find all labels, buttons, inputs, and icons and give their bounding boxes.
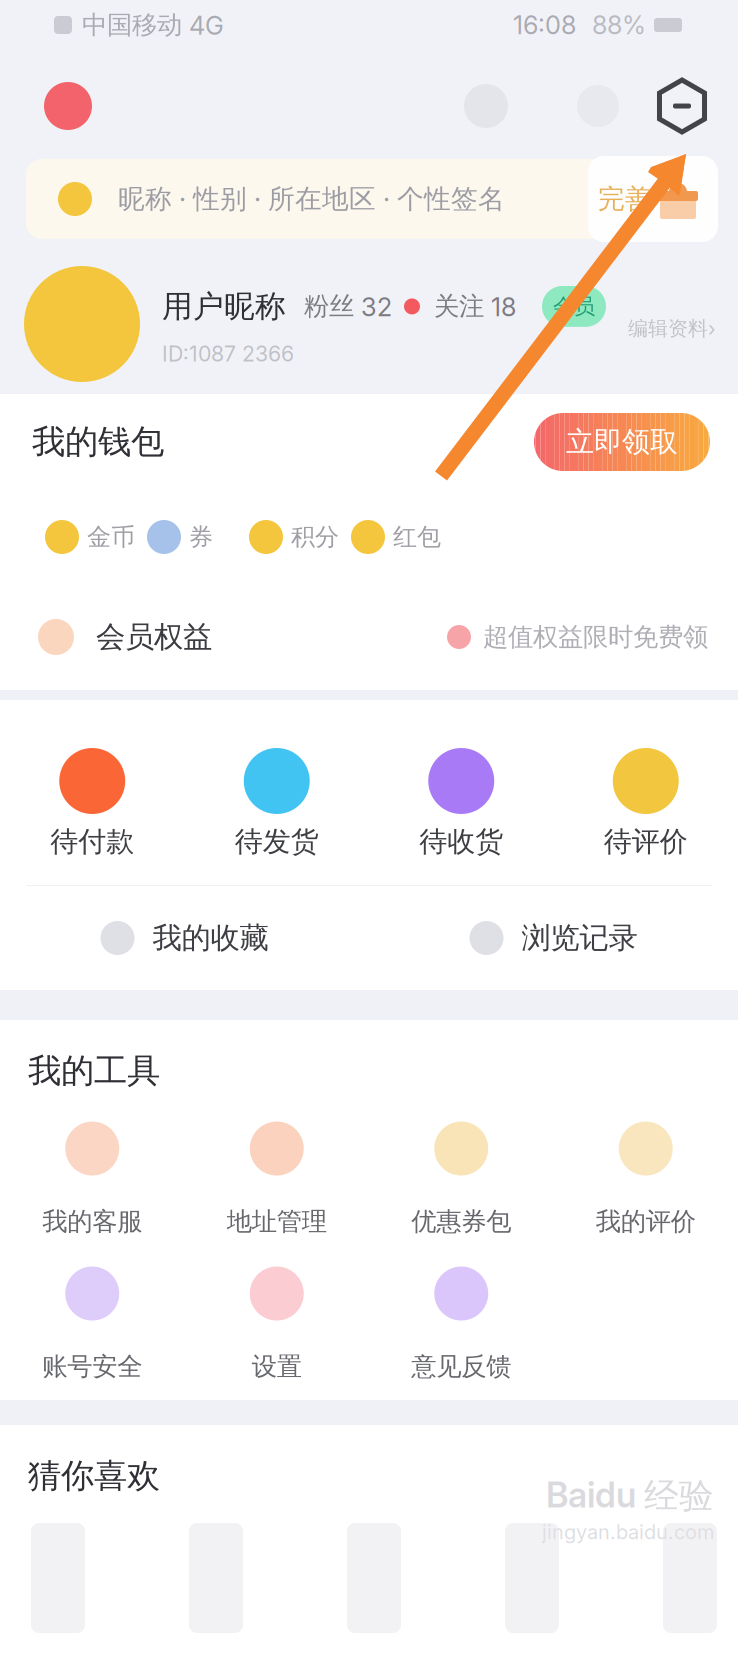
staticText: ID:1087 2366 — [162, 341, 294, 367]
button[interactable]: 我的收藏 — [0, 886, 369, 990]
button[interactable] — [346, 1523, 402, 1643]
staticText: Baidu 经验 — [546, 1474, 714, 1518]
button[interactable]: 我的评价 — [553, 1092, 738, 1237]
staticText: 中国移动 4G — [82, 9, 224, 41]
button[interactable] — [662, 1523, 718, 1643]
staticText: 我的钱包 — [32, 421, 164, 463]
button[interactable]: Settings — [652, 76, 712, 136]
button[interactable]: 券 — [147, 490, 245, 584]
button[interactable]: Avatar — [24, 68, 112, 144]
button[interactable]: 我的客服 — [0, 1092, 184, 1237]
staticText: 用户昵称 — [162, 287, 286, 326]
staticText: 关注 18 — [434, 290, 516, 322]
button[interactable]: 设置 — [184, 1237, 369, 1382]
staticText: 待评价 — [604, 824, 688, 859]
staticText: 昵称 · 性别 · 所在地区 · 个性签名 — [118, 182, 505, 216]
staticText: 待付款 — [50, 824, 134, 859]
staticText: 立即领取 — [566, 424, 678, 460]
button[interactable] — [30, 1523, 86, 1643]
staticText: 我的评价 — [596, 1205, 696, 1237]
button[interactable]: 金币 — [45, 490, 143, 584]
button[interactable]: 待评价 — [553, 700, 738, 885]
staticText: 设置 — [252, 1350, 302, 1382]
button[interactable]: 会员权益 — [0, 584, 738, 690]
staticText: 88% — [592, 10, 646, 40]
button[interactable]: 账号安全 — [0, 1237, 184, 1382]
button[interactable]: 昵称 · 性别 · 所在地区 · 个性签名 — [0, 162, 738, 242]
button[interactable] — [188, 1523, 244, 1643]
button[interactable]: 立即领取 — [534, 413, 710, 471]
staticText: 待收货 — [419, 824, 503, 859]
staticText: 待发货 — [235, 824, 319, 859]
staticText: 编辑资料› — [628, 316, 716, 341]
button[interactable]: 会员 — [542, 286, 606, 327]
button[interactable]: 意见反馈 — [369, 1237, 553, 1382]
staticText: 超值权益限时免费领 — [483, 621, 708, 653]
staticText: 猜你喜欢 — [28, 1455, 160, 1497]
staticText: 金币 — [87, 522, 135, 552]
staticText: 16:08 — [513, 10, 576, 40]
button[interactable]: 红包 — [351, 490, 449, 584]
staticText: jingyan.baidu.com — [542, 1520, 714, 1544]
button[interactable]: Messages — [562, 70, 634, 142]
staticText: 账号安全 — [42, 1350, 142, 1382]
staticText: 会员 — [553, 293, 595, 320]
staticText: 我的工具 — [28, 1050, 160, 1092]
button[interactable]: Profile photo — [24, 266, 140, 382]
button[interactable]: 待收货 — [369, 700, 553, 885]
staticText: 红包 — [393, 522, 441, 552]
button[interactable]: 地址管理 — [184, 1092, 369, 1237]
staticText: 浏览记录 — [521, 919, 637, 956]
button[interactable]: 浏览记录 — [369, 886, 738, 990]
button[interactable]: 待付款 — [0, 700, 184, 885]
staticText: 我的收藏 — [152, 919, 268, 956]
staticText: 地址管理 — [227, 1205, 327, 1237]
button[interactable]: Scan code — [450, 70, 522, 142]
staticText: 优惠券包 — [411, 1205, 511, 1237]
staticText: 我的客服 — [42, 1205, 142, 1237]
staticText: 会员权益 — [96, 618, 212, 655]
staticText: 粉丝 32 — [304, 290, 392, 322]
button[interactable]: 积分 — [249, 490, 347, 584]
staticText: 完善 — [598, 182, 652, 216]
staticText: 券 — [189, 522, 213, 552]
staticText: 积分 — [291, 522, 339, 552]
button[interactable]: 编辑资料› — [628, 316, 716, 341]
staticText: 意见反馈 — [411, 1350, 511, 1382]
button[interactable] — [504, 1523, 560, 1643]
button[interactable]: 优惠券包 — [369, 1092, 553, 1237]
button[interactable]: 待发货 — [184, 700, 369, 885]
